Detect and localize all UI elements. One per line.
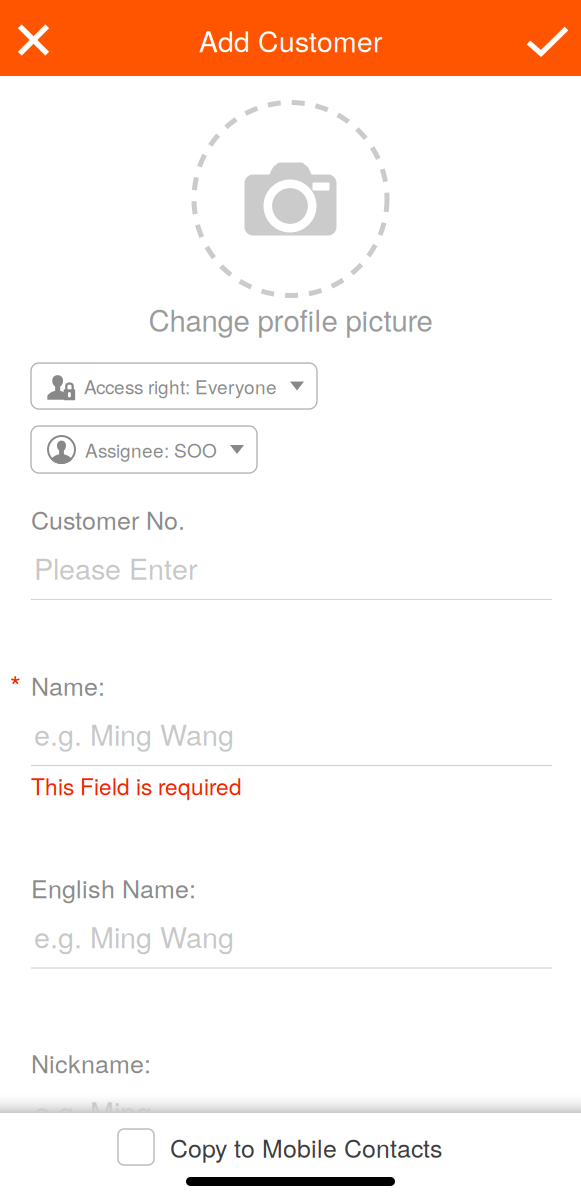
staticText: Copy to Mobile Contacts [170, 1129, 442, 1165]
staticText: Name: [31, 667, 105, 703]
staticText: * [10, 665, 31, 705]
staticText: English Name: [31, 870, 196, 905]
button[interactable]: Assignee: SOO [31, 426, 257, 473]
staticText: e.g. Ming [34, 1090, 152, 1131]
staticText: e.g. Ming Wang [34, 713, 234, 754]
button[interactable]: Change profile picture [0, 100, 581, 340]
button[interactable]: Access right: Everyone [31, 363, 317, 409]
button[interactable]: Close [0, 0, 70, 76]
staticText: Assignee: SOO [85, 436, 217, 463]
staticText: Add Customer [199, 20, 382, 60]
staticText: This Field is required [31, 769, 242, 802]
button[interactable]: Save [506, 0, 581, 76]
staticText: Nickname: [31, 1045, 151, 1080]
button[interactable]: Copy to Mobile Contacts [0, 1113, 581, 1181]
staticText: e.g. Ming Wang [34, 915, 234, 956]
staticText: Change profile picture [148, 298, 432, 340]
staticText: Please Enter [34, 547, 198, 588]
staticText: Access right: Everyone [84, 372, 277, 399]
staticText: Customer No. [31, 501, 185, 537]
